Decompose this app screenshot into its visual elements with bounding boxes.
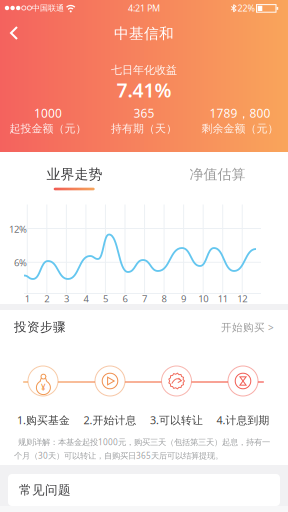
button[interactable]: 净值估算 xyxy=(145,153,288,195)
staticText: 1000 xyxy=(34,105,62,121)
staticText: 11 xyxy=(218,292,228,305)
button[interactable]: 常见问题 xyxy=(8,474,280,506)
staticText: 12 xyxy=(237,292,247,305)
staticText: 2.开始计息 xyxy=(83,413,136,427)
staticText: 6 xyxy=(122,292,127,305)
staticText: 1 xyxy=(25,292,30,305)
staticText: 7.41% xyxy=(116,77,171,103)
staticText: 365 xyxy=(133,105,154,121)
staticText: 持有期（天） xyxy=(111,122,177,135)
staticText: 个月（30天）可以转让，自购买日365天后可以结算提现。 xyxy=(14,450,223,461)
staticText: 6% xyxy=(14,256,27,269)
staticText: 4.计息到期 xyxy=(216,413,269,427)
staticText: 10 xyxy=(198,292,208,305)
staticText: 12% xyxy=(9,223,27,235)
staticText: 中国联通 xyxy=(32,3,64,13)
button[interactable]: 业界走势 xyxy=(2,153,146,195)
staticText: 5 xyxy=(103,292,108,305)
staticText: ¥ xyxy=(41,382,46,393)
staticText: 规则详解：本基金起投1000元，购买三天（包括第三天）起息，持有一 xyxy=(18,436,270,448)
staticText: 1.购买基金 xyxy=(17,413,70,427)
staticText: 常见问题 xyxy=(19,482,71,498)
staticText: 3.可以转让 xyxy=(150,413,203,427)
staticText: 投资步骤 xyxy=(14,319,66,335)
staticText: 4:21 PM xyxy=(128,2,160,14)
staticText: 开始购买 xyxy=(221,321,265,334)
staticText: 2 xyxy=(44,292,49,305)
staticText: 中基信和 xyxy=(114,24,174,43)
staticText: 4 xyxy=(83,292,88,305)
staticText: 9 xyxy=(181,292,186,305)
staticText: 业界走势 xyxy=(46,166,102,183)
staticText: 22% xyxy=(237,2,254,14)
staticText: > xyxy=(268,321,274,334)
staticText: 8 xyxy=(162,292,167,305)
staticText: 7 xyxy=(142,292,147,305)
staticText: 起投金额（元） xyxy=(9,122,86,135)
button[interactable]: Back xyxy=(3,23,27,43)
button[interactable]: 开始购买 xyxy=(221,321,274,334)
staticText: 剩余金额（元） xyxy=(201,122,278,135)
staticText: 净值估算 xyxy=(189,166,245,183)
staticText: 1789，800 xyxy=(209,105,270,121)
staticText: 3 xyxy=(64,292,69,305)
staticText: 七日年化收益 xyxy=(111,63,177,77)
